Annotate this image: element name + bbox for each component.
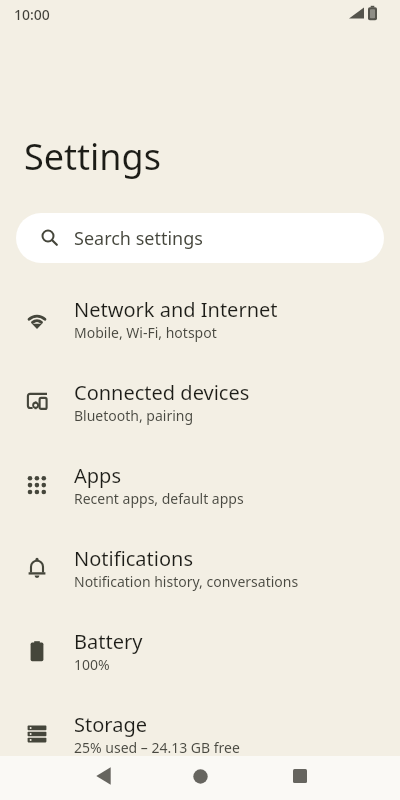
staticText: Recent apps, default apps: [74, 489, 244, 508]
staticText: Notifications: [74, 545, 193, 572]
button[interactable]: Apps: [0, 443, 400, 526]
button[interactable]: Battery: [0, 609, 400, 692]
button[interactable]: Storage: [0, 692, 400, 775]
staticText: Search settings: [74, 226, 203, 251]
staticText: Notification history, conversations: [74, 572, 299, 591]
staticText: 25% used – 24.13 GB free: [74, 738, 240, 757]
staticText: Connected devices: [74, 379, 250, 406]
staticText: Bluetooth, pairing: [74, 406, 194, 425]
button[interactable]: [83, 756, 123, 796]
staticText: Settings: [24, 132, 161, 181]
staticText: Storage: [74, 711, 147, 738]
button[interactable]: Connected devices: [0, 360, 400, 443]
staticText: Battery: [74, 628, 143, 655]
staticText: 10:00: [14, 5, 50, 24]
button[interactable]: Notifications: [0, 526, 400, 609]
staticText: 100%: [74, 655, 110, 674]
staticText: Mobile, Wi-Fi, hotspot: [74, 323, 217, 342]
button[interactable]: Search settings: [16, 213, 384, 263]
staticText: Apps: [74, 462, 121, 489]
button[interactable]: Network and Internet: [0, 277, 400, 360]
button[interactable]: [280, 756, 320, 796]
button[interactable]: [180, 756, 220, 796]
staticText: Network and Internet: [74, 296, 278, 323]
